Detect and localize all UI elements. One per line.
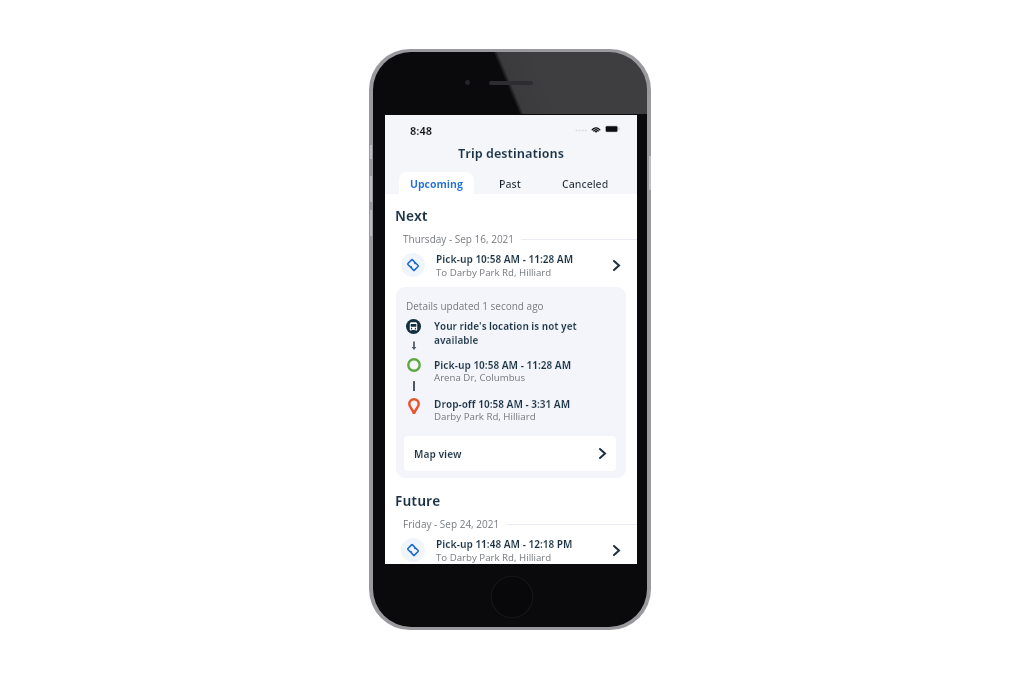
- staticText: Upcoming: [410, 177, 463, 191]
- staticText: Pick-up 10:58 AM - 11:28 AM: [434, 358, 572, 372]
- staticText: To Darby Park Rd, Hilliard: [436, 551, 552, 564]
- staticText: Your ride's location is not yet availabl…: [434, 320, 577, 346]
- button[interactable]: Canceled: [548, 172, 622, 194]
- staticText: Past: [499, 177, 521, 191]
- staticText: Details updated 1 second ago: [406, 299, 544, 313]
- button[interactable]: Upcoming: [399, 172, 474, 194]
- staticText: 8:48: [410, 123, 433, 138]
- staticText: Pick-up 11:48 AM - 12:18 PM: [436, 537, 573, 551]
- other: Open map view: [599, 448, 606, 459]
- button[interactable]: Map view: [404, 436, 616, 471]
- staticText: Darby Park Rd, Hilliard: [434, 410, 536, 423]
- staticText: Thursday - Sep 16, 2021: [403, 232, 515, 246]
- other: Open trip details: [613, 545, 620, 556]
- staticText: Canceled: [562, 177, 609, 191]
- staticText: Drop-off 10:58 AM - 3:31 AM: [434, 397, 571, 411]
- button[interactable]: Pick-up 11:48 AM - 12:18 PM: [385, 536, 637, 564]
- staticText: Arena Dr, Columbus: [434, 371, 526, 384]
- staticText: To Darby Park Rd, Hilliard: [436, 266, 552, 279]
- staticText: Pick-up 10:58 AM - 11:28 AM: [436, 252, 574, 266]
- button[interactable]: Pick-up 10:58 AM - 11:28 AM: [385, 251, 637, 279]
- staticText: Friday - Sep 24, 2021: [403, 517, 500, 531]
- staticText: Next: [395, 207, 428, 225]
- staticText: Future: [395, 492, 441, 510]
- button[interactable]: Past: [480, 172, 540, 194]
- staticText: Trip destinations: [385, 145, 637, 162]
- other: Open trip details: [613, 260, 620, 271]
- staticText: Map view: [414, 447, 462, 461]
